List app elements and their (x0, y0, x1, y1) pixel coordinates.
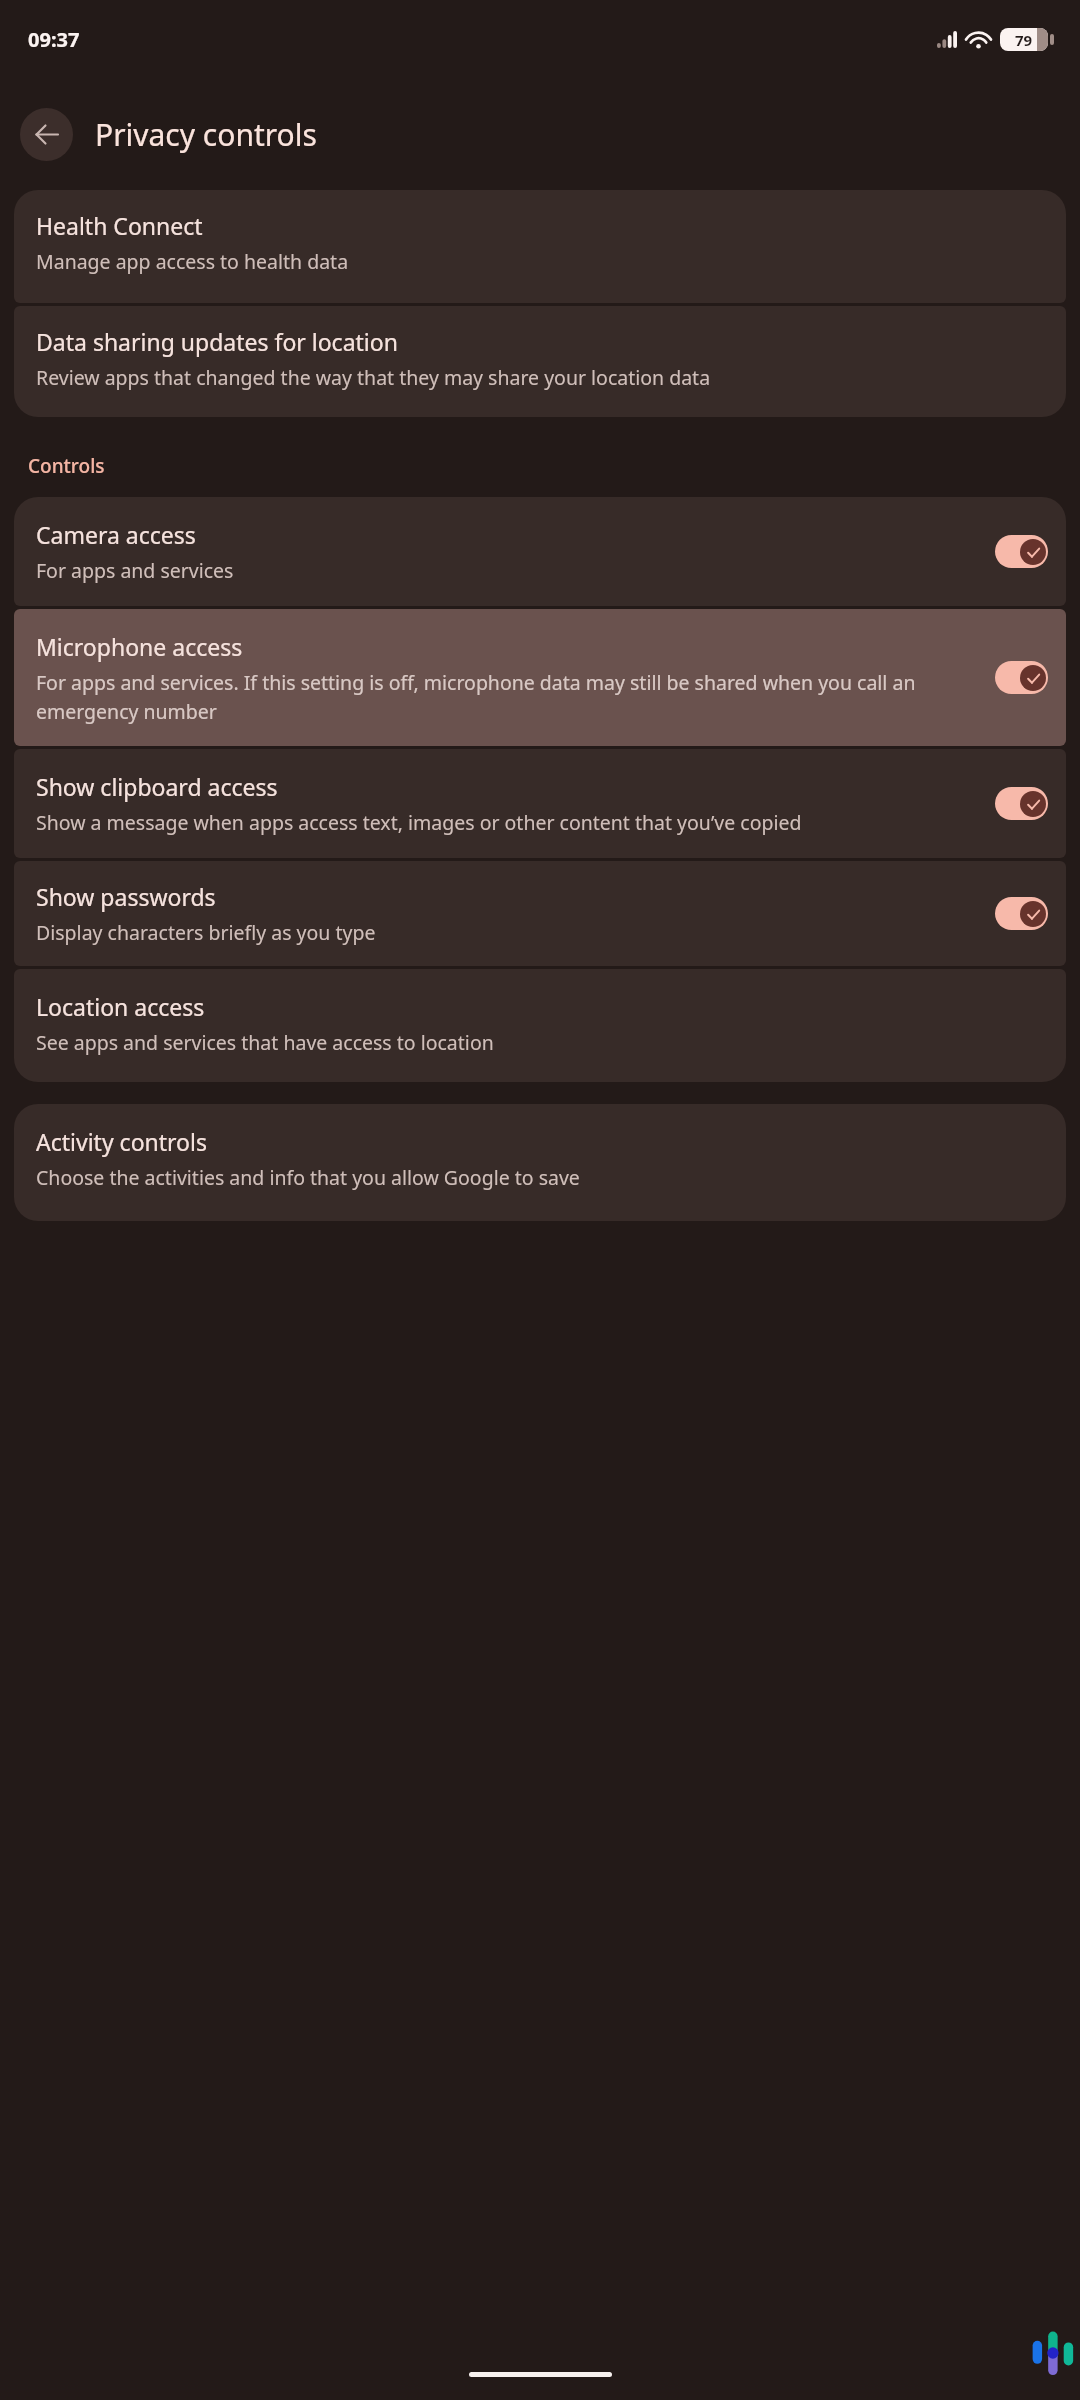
staticText: Review apps that changed the way that th… (36, 364, 711, 391)
button[interactable]: Microphone access (14, 609, 1066, 746)
staticText: Health Connect (36, 210, 203, 241)
button[interactable]: Show clipboard access (14, 749, 1066, 858)
button[interactable]: Back (20, 108, 73, 161)
staticText: Microphone access (36, 631, 243, 662)
staticText: Manage app access to health data (36, 248, 349, 275)
button[interactable]: Health Connect (14, 190, 1066, 303)
staticText: Show passwords (36, 881, 216, 912)
staticText: 09:37 (28, 26, 80, 53)
button[interactable]: On (995, 897, 1048, 930)
button[interactable]: Activity controls (14, 1104, 1066, 1221)
staticText: Controls (28, 453, 105, 479)
button[interactable]: On (995, 535, 1048, 568)
staticText: Show a message when apps access text, im… (36, 809, 802, 836)
staticText: For apps and services. If this setting i… (36, 669, 985, 724)
staticText: See apps and services that have access t… (36, 1029, 494, 1056)
staticText: Show clipboard access (36, 771, 278, 802)
staticText: Privacy controls (95, 114, 317, 155)
staticText: Camera access (36, 519, 196, 550)
staticText: Location access (36, 991, 205, 1022)
button[interactable]: On (995, 661, 1048, 694)
staticText: For apps and services (36, 557, 234, 584)
button[interactable]: Show passwords (14, 861, 1066, 966)
button[interactable]: Data sharing updates for location (14, 306, 1066, 417)
staticText: Display characters briefly as you type (36, 919, 376, 946)
staticText: Choose the activities and info that you … (36, 1164, 580, 1191)
button[interactable]: Location access (14, 969, 1066, 1082)
button[interactable]: Camera access (14, 497, 1066, 606)
staticText: 79 (1015, 30, 1033, 50)
staticText: Data sharing updates for location (36, 326, 398, 357)
button[interactable]: On (995, 787, 1048, 820)
staticText: Activity controls (36, 1126, 207, 1157)
